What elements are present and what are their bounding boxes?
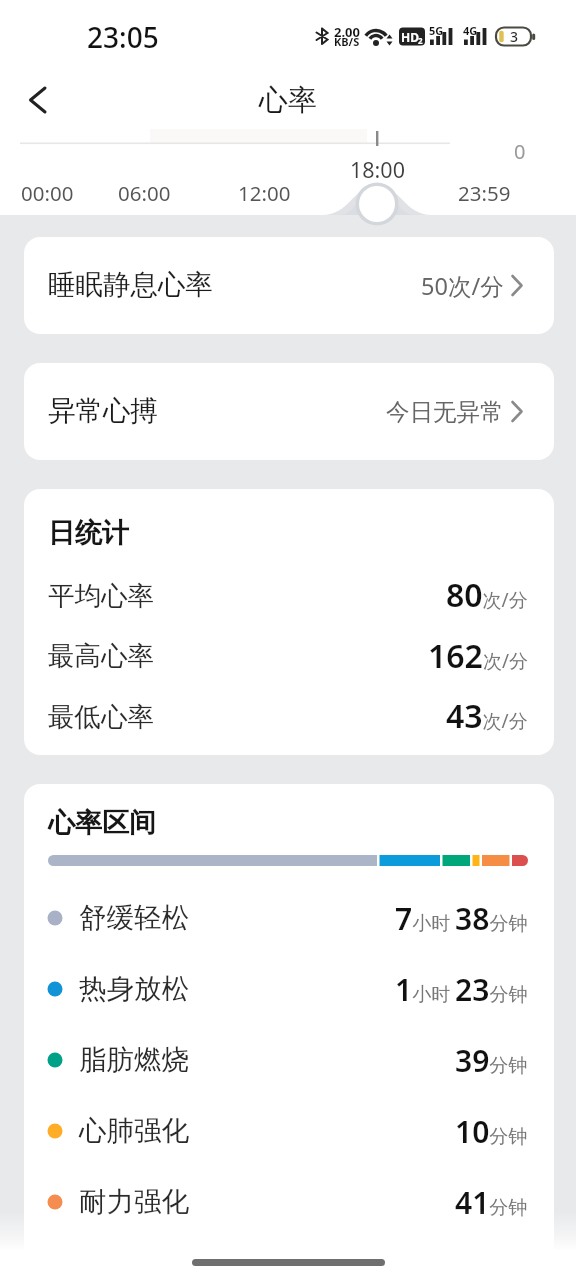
staticText: 162次/分 xyxy=(428,634,528,678)
button[interactable] xyxy=(24,784,554,1280)
staticText: 0 xyxy=(514,138,526,165)
staticText: 7小时 38分钟 xyxy=(395,898,528,939)
staticText: 10分钟 xyxy=(455,1111,528,1152)
staticText: 41分钟 xyxy=(455,1182,528,1223)
staticText: 4G xyxy=(463,23,478,38)
staticText: 23:59 xyxy=(458,179,511,207)
staticText: 23:05 xyxy=(87,18,159,56)
staticText: 39分钟 xyxy=(455,1040,528,1081)
staticText: 2 xyxy=(418,35,423,46)
staticText: 最高心率 xyxy=(48,639,154,672)
staticText: 睡眠静息心率 xyxy=(48,268,213,303)
staticText: HD xyxy=(401,29,419,45)
staticText: 心率 xyxy=(259,82,317,119)
staticText: 心率区间 xyxy=(48,806,156,840)
staticText: 18:00 xyxy=(350,155,405,184)
staticText: 心肺强化 xyxy=(79,1114,189,1149)
staticText: 80次/分 xyxy=(446,573,528,617)
staticText: 5G xyxy=(429,23,444,38)
button[interactable] xyxy=(24,363,554,460)
button[interactable] xyxy=(14,74,66,126)
staticText: 平均心率 xyxy=(48,579,154,612)
staticText: 43次/分 xyxy=(446,694,528,738)
staticText: 06:00 xyxy=(118,179,171,207)
staticText: 热身放松 xyxy=(79,972,189,1007)
staticText: 2.00 xyxy=(334,23,360,41)
button[interactable] xyxy=(24,489,554,755)
staticText: 00:00 xyxy=(21,179,74,207)
button[interactable] xyxy=(24,237,554,334)
staticText: KB/S xyxy=(334,34,360,49)
staticText: 脂肪燃烧 xyxy=(79,1043,189,1078)
staticText: 异常心搏 xyxy=(48,394,158,429)
staticText: 今日无异常 xyxy=(386,397,504,427)
staticText: 耐力强化 xyxy=(79,1185,189,1220)
staticText: 12:00 xyxy=(238,179,291,207)
staticText: 舒缓轻松 xyxy=(79,901,189,936)
staticText: 3 xyxy=(510,27,519,46)
staticText: 50次/分 xyxy=(421,270,504,302)
staticText: 最低心率 xyxy=(48,700,154,733)
staticText: 1小时 23分钟 xyxy=(395,969,528,1010)
staticText: 日统计 xyxy=(48,516,129,550)
